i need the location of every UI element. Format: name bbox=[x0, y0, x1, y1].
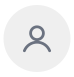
button[interactable]: Account bbox=[3, 5, 70, 72]
